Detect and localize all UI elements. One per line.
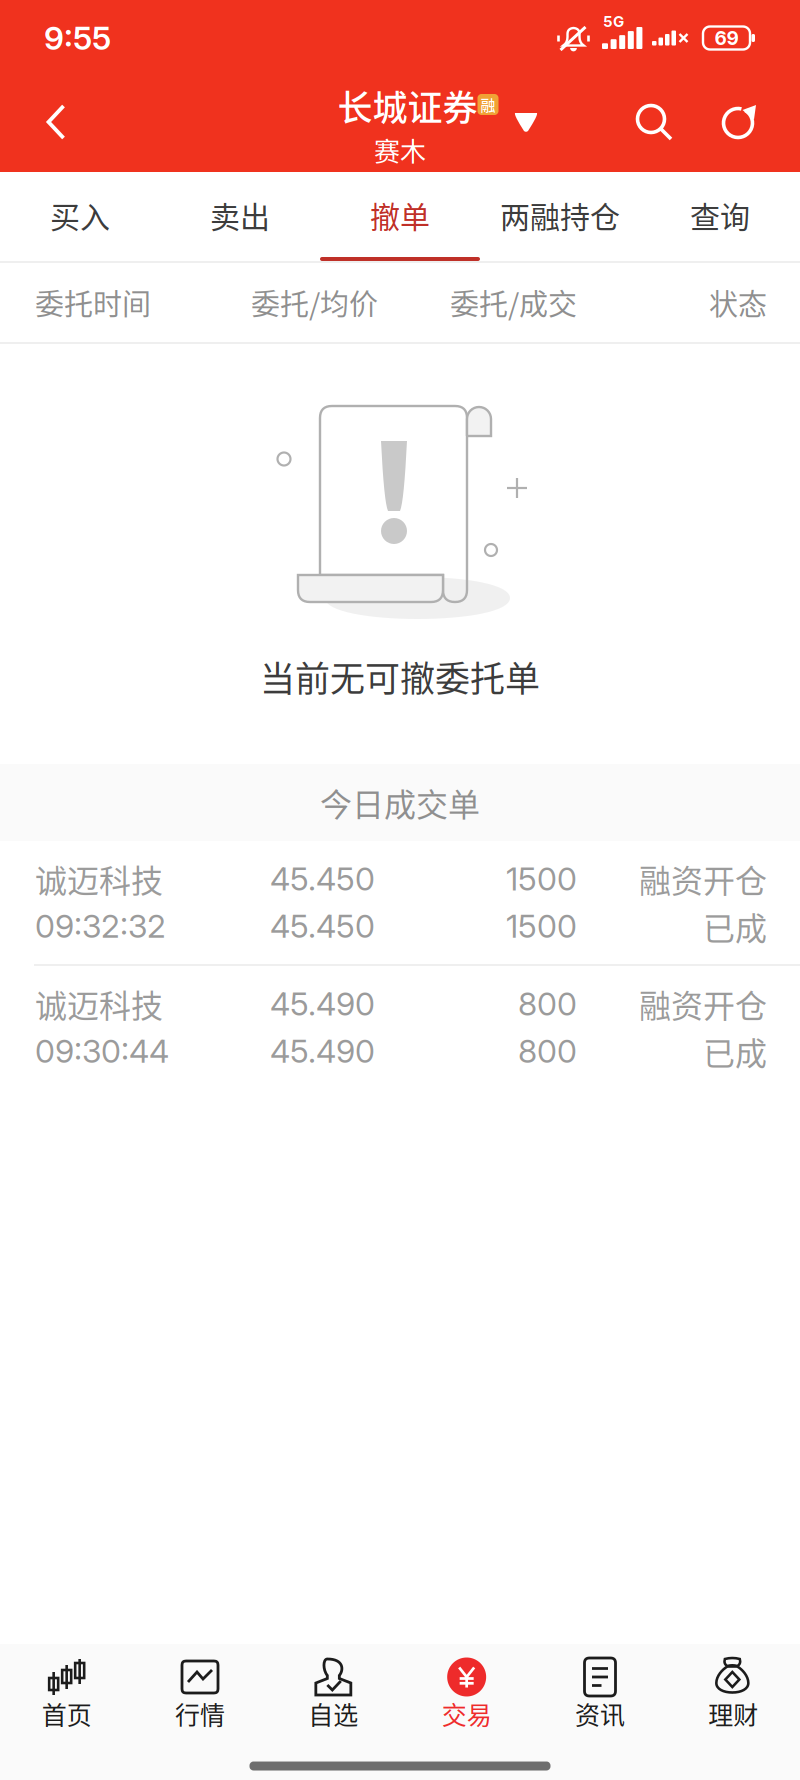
staticText: 融 (480, 94, 495, 115)
staticText: 诚迈科技 (35, 981, 163, 1027)
staticText: 委托/均价 (251, 281, 378, 323)
staticText: 09:32:32 (35, 907, 166, 945)
staticText: 两融持仓 (500, 193, 620, 237)
staticText: 买入 (50, 193, 110, 237)
button[interactable]: 资讯 (533, 1639, 667, 1753)
button[interactable]: 自选 (267, 1639, 400, 1753)
staticText: 45.450 (270, 907, 375, 945)
button[interactable]: 卖出 (160, 172, 320, 261)
button[interactable]: 刷新 (696, 76, 780, 168)
staticText: 09:30:44 (35, 1032, 169, 1070)
staticText: 状态 (709, 281, 767, 323)
staticText: 已成 (703, 903, 767, 949)
staticText: 行情 (175, 1695, 225, 1732)
staticText: 交易 (442, 1695, 492, 1732)
staticText: 1500 (506, 859, 577, 898)
button[interactable]: 两融持仓 (480, 172, 640, 261)
button[interactable]: 交易 (400, 1639, 533, 1753)
button[interactable]: 查询 (640, 172, 800, 261)
button[interactable]: 行情 (133, 1639, 267, 1753)
staticText: 赛木 (374, 131, 426, 169)
staticText: 800 (518, 1032, 577, 1070)
button[interactable]: 买入 (0, 172, 160, 261)
staticText: 委托时间 (35, 281, 151, 323)
staticText: 69 (714, 26, 738, 49)
button[interactable]: 理财 (667, 1639, 800, 1753)
staticText: 5G (603, 12, 624, 30)
staticText: 已成 (703, 1028, 767, 1074)
staticText: 融资开仓 (639, 981, 767, 1027)
staticText: 当前无可撤委托单 (260, 651, 540, 702)
staticText: 1500 (506, 907, 577, 945)
staticText: 自选 (308, 1695, 358, 1732)
staticText: 撤单 (370, 193, 430, 237)
staticText: 理财 (708, 1695, 758, 1732)
staticText: 诚迈科技 (35, 856, 163, 902)
staticText: 资讯 (575, 1695, 625, 1732)
button[interactable]: 首页 (0, 1639, 133, 1753)
staticText: 800 (518, 984, 577, 1023)
staticText: 今日成交单 (320, 779, 480, 826)
button[interactable]: 搜索 (612, 76, 696, 168)
staticText: 卖出 (210, 193, 270, 237)
staticText: 融资开仓 (639, 856, 767, 902)
staticText: 45.490 (270, 984, 375, 1023)
button[interactable]: 长城证券 赛木 切换账户 (261, 76, 538, 172)
staticText: 45.450 (270, 859, 375, 898)
staticText: 9:55 (44, 19, 111, 57)
button[interactable]: 返回 (10, 76, 102, 168)
staticText: 首页 (42, 1695, 92, 1732)
button[interactable]: 撤单 (320, 172, 480, 261)
staticText: 查询 (690, 193, 750, 237)
staticText: 委托/成交 (450, 281, 577, 323)
staticText: 45.490 (270, 1032, 375, 1070)
staticText: 长城证券 (337, 80, 477, 131)
